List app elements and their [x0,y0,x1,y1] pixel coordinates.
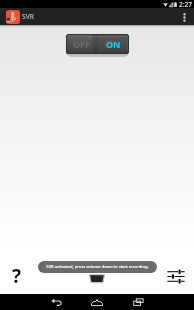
staticText: OFF [73,38,91,50]
button[interactable]: More options [177,10,191,24]
staticText: ON [106,38,121,50]
button[interactable]: Help [7,263,27,283]
button[interactable]: Back [39,294,73,310]
staticText: 2:27 [179,0,192,8]
button[interactable]: Recents [121,294,155,310]
staticText: SVR activated, press volume down to star… [46,264,149,270]
button[interactable]: OFF [66,34,129,54]
staticText: SVR [22,12,34,21]
button[interactable]: Home [80,294,114,310]
staticText: ? [12,263,22,283]
button[interactable]: Settings [166,266,186,286]
